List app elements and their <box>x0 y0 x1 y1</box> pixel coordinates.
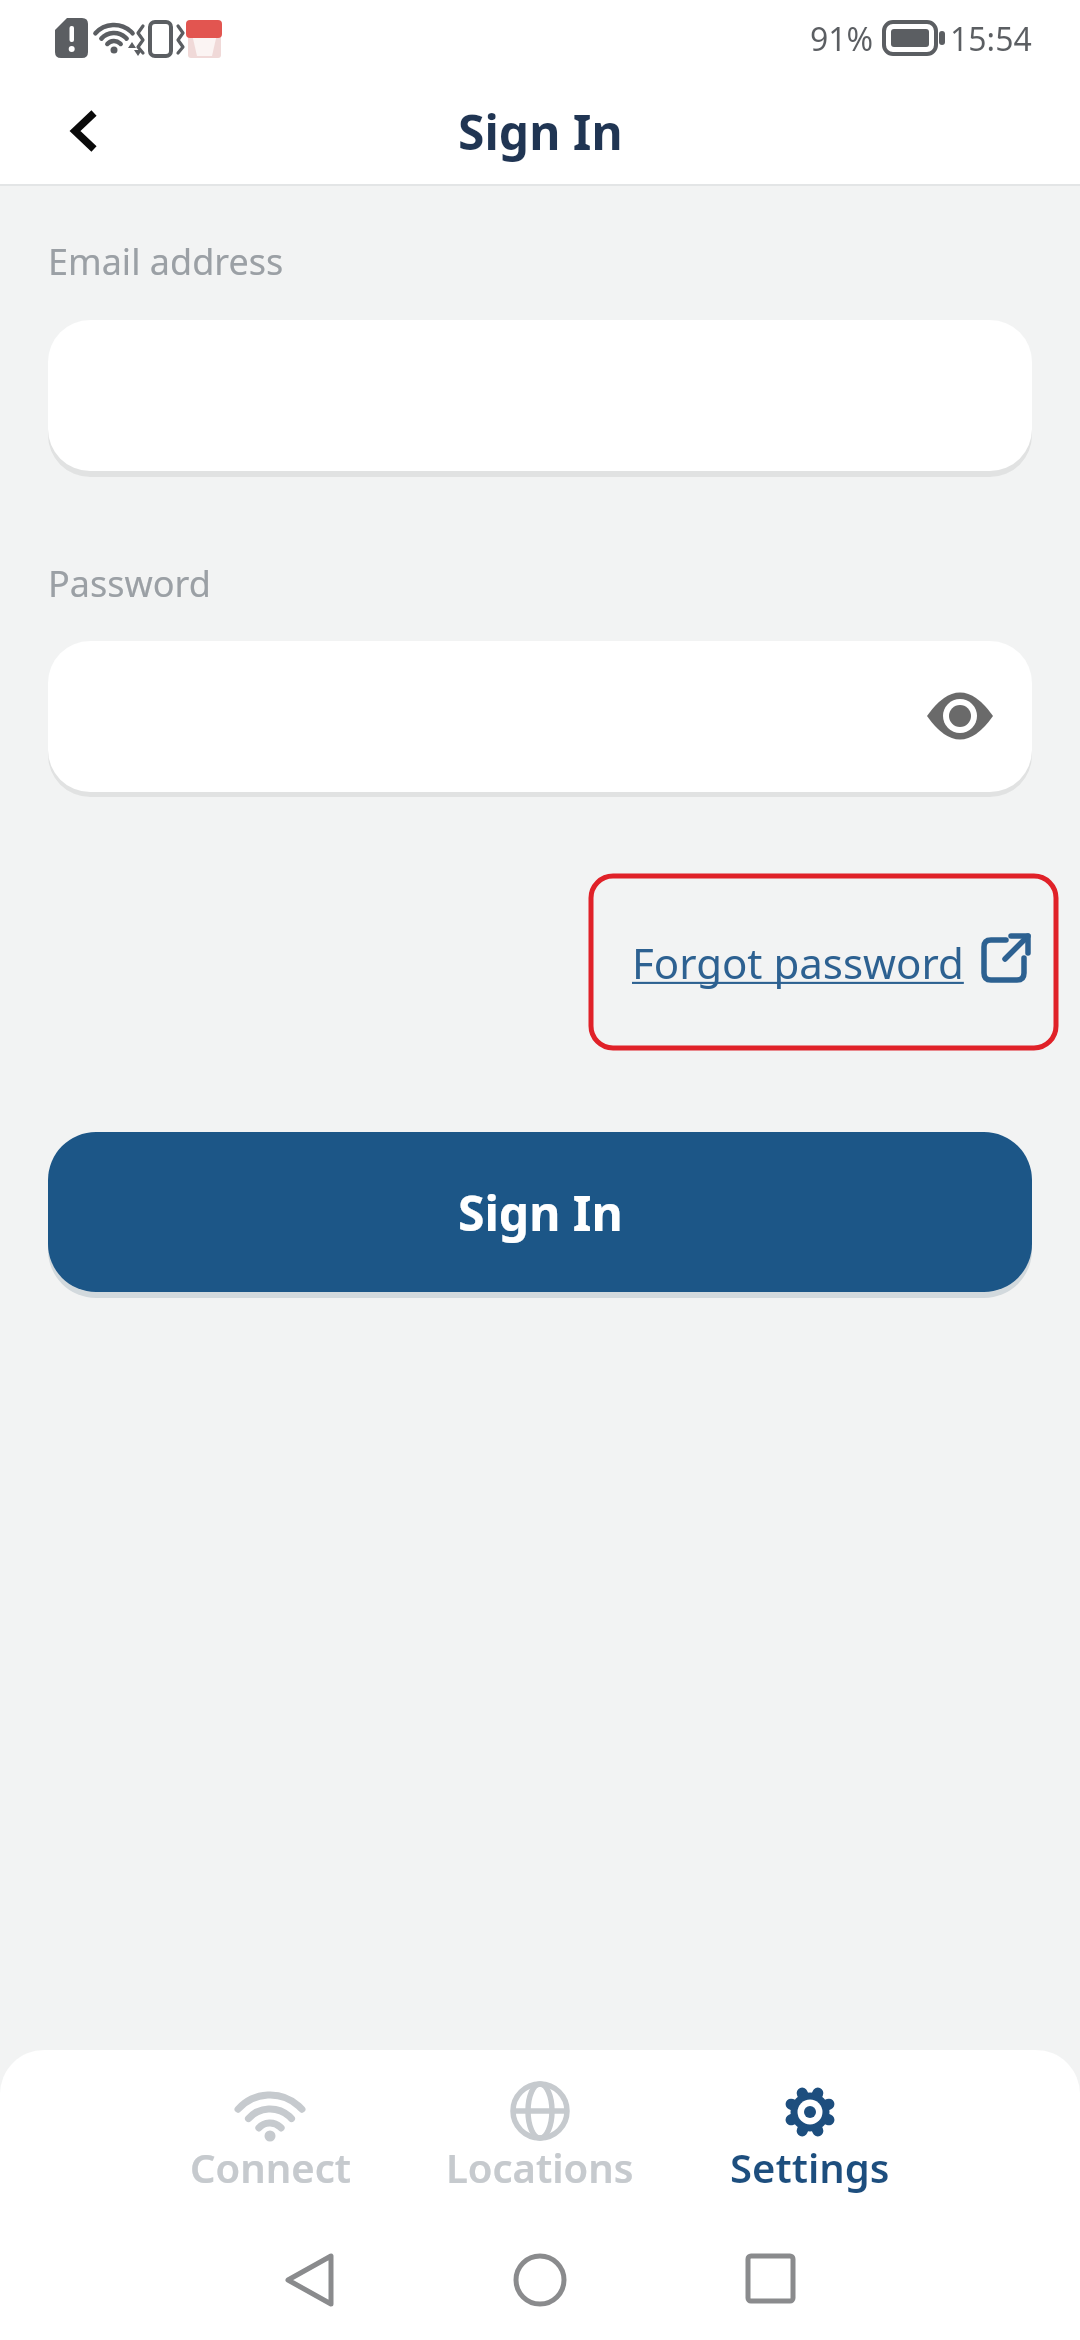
staticText: Forgot password <box>632 934 964 991</box>
staticText: Settings <box>730 2140 890 2194</box>
staticText: 15:54 <box>950 17 1032 61</box>
button[interactable] <box>150 2062 390 2192</box>
staticText: Connect <box>190 2140 351 2194</box>
staticText: 91% <box>810 17 874 61</box>
button[interactable]: Sign In <box>48 1132 1032 1292</box>
staticText: Locations <box>446 2140 634 2194</box>
button[interactable] <box>48 641 1032 792</box>
button[interactable] <box>420 2062 660 2192</box>
button[interactable] <box>710 2230 830 2330</box>
staticText: Password <box>48 559 211 608</box>
button[interactable] <box>52 96 116 166</box>
staticText: Email address <box>48 237 284 286</box>
button[interactable]: Forgot password <box>620 920 1040 1004</box>
button[interactable] <box>912 680 1008 756</box>
staticText: Sign In <box>458 99 623 164</box>
button[interactable] <box>690 2062 930 2192</box>
button[interactable] <box>480 2230 600 2330</box>
staticText: Sign In <box>458 1180 623 1245</box>
button[interactable] <box>250 2230 370 2330</box>
